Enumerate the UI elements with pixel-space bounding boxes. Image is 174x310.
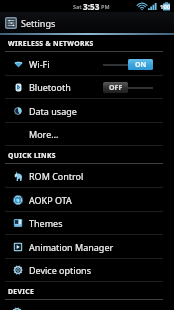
staticText: ROM Control <box>29 170 84 182</box>
staticText: 3:53 <box>83 1 100 12</box>
button[interactable]: On <box>103 59 153 70</box>
staticText: WIRELESS & NETWORKS <box>8 39 94 48</box>
staticText: Animation Manager <box>29 241 114 253</box>
staticText: Data usage <box>29 105 77 117</box>
button[interactable]: Themes <box>0 211 174 235</box>
staticText: Themes <box>29 217 63 229</box>
button[interactable]: AOKP OTA <box>0 188 174 212</box>
button[interactable]: Settings <box>0 12 174 33</box>
staticText: AOKP OTA <box>29 194 72 206</box>
staticText: Device options <box>29 264 91 276</box>
staticText: QUICK LINKS <box>8 151 56 160</box>
staticText: More... <box>29 128 59 140</box>
button[interactable]: More... <box>0 122 174 146</box>
staticText: ON <box>135 60 147 70</box>
staticText: Settings <box>21 17 56 29</box>
staticText: Sat <box>73 3 82 10</box>
staticText: DEVICE <box>8 287 35 296</box>
staticText: OFF <box>109 83 123 93</box>
staticText: Bluetooth <box>29 81 71 93</box>
button[interactable] <box>0 300 174 310</box>
button[interactable]: Animation Manager <box>0 235 174 259</box>
button[interactable]: Data usage <box>0 99 174 123</box>
button[interactable]: Device options <box>0 258 174 282</box>
button[interactable]: Wi-Fi <box>0 52 174 76</box>
button[interactable]: Off <box>103 82 153 93</box>
staticText: PM <box>101 3 110 10</box>
staticText: Wi-Fi <box>29 58 50 70</box>
button[interactable]: ROM Control <box>0 164 174 188</box>
staticText: 100 <box>160 3 171 11</box>
button[interactable]: Bluetooth <box>0 75 174 99</box>
